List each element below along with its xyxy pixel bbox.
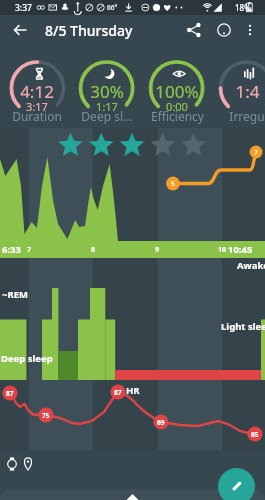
staticText: Irregu bbox=[229, 108, 265, 124]
staticText: 8 bbox=[91, 245, 96, 255]
button[interactable] bbox=[0, 489, 265, 500]
staticText: 65 bbox=[251, 430, 259, 439]
staticText: 1:4 bbox=[235, 80, 260, 103]
staticText: 87 bbox=[114, 388, 122, 397]
staticText: 30% bbox=[90, 80, 124, 103]
staticText: 4:12 bbox=[20, 80, 54, 103]
button[interactable]: 30% bbox=[73, 48, 141, 124]
button[interactable]: Watch bbox=[2, 454, 22, 474]
staticText: 3:37 bbox=[15, 2, 32, 14]
button[interactable]: More options bbox=[239, 19, 261, 41]
staticText: 5 bbox=[171, 179, 175, 188]
button[interactable]: 100% bbox=[143, 48, 211, 124]
staticText: 9 bbox=[155, 245, 160, 255]
staticText: 3:17 bbox=[26, 99, 48, 114]
staticText: 0:00 bbox=[166, 99, 188, 114]
staticText: 66° bbox=[107, 3, 118, 12]
staticText: 87 bbox=[6, 389, 14, 398]
staticText: 7 bbox=[254, 148, 258, 157]
staticText: 10 bbox=[218, 245, 227, 255]
staticText: 7 bbox=[27, 245, 32, 255]
button[interactable]: Help bbox=[211, 17, 237, 43]
button[interactable]: 4:12 bbox=[3, 48, 71, 124]
staticText: Awake bbox=[237, 259, 265, 272]
staticText: 6:33 bbox=[2, 243, 21, 256]
staticText: Duration bbox=[12, 108, 62, 124]
staticText: Light sleep bbox=[221, 320, 265, 333]
staticText: 100% bbox=[155, 80, 199, 103]
button[interactable]: Share bbox=[181, 17, 207, 43]
button[interactable]: 1:4 bbox=[213, 48, 265, 124]
staticText: HR bbox=[126, 384, 140, 397]
staticText: ~REM bbox=[2, 288, 28, 301]
button[interactable]: Edit bbox=[218, 468, 255, 500]
staticText: 10:45 bbox=[228, 243, 253, 256]
staticText: Efficiency bbox=[151, 108, 204, 124]
staticText: Deep sleep bbox=[1, 352, 53, 365]
staticText: 69 bbox=[157, 418, 165, 427]
button[interactable]: Back bbox=[0, 15, 30, 45]
staticText: Deep sl... bbox=[81, 108, 133, 124]
staticText: 18% bbox=[235, 2, 251, 13]
staticText: 75 bbox=[42, 411, 50, 420]
button[interactable]: Location bbox=[18, 454, 38, 474]
staticText: 1:17 bbox=[96, 99, 118, 114]
staticText: 8/5 Thursday bbox=[45, 21, 133, 40]
